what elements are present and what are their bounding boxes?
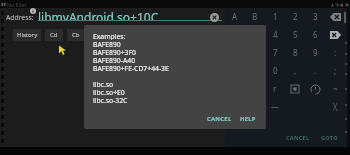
staticText: Cb bbox=[72, 31, 80, 39]
button[interactable]: Undo bbox=[306, 80, 324, 98]
staticText: R bbox=[96, 31, 100, 39]
staticText: 3 bbox=[313, 11, 318, 22]
button[interactable]: History bbox=[13, 29, 41, 41]
staticText: r bbox=[273, 83, 277, 94]
button[interactable]: B bbox=[246, 7, 264, 25]
staticText: ▣ bbox=[345, 2, 349, 7]
button[interactable]: 4 bbox=[266, 25, 284, 43]
staticText: 5 bbox=[293, 29, 298, 40]
staticText: Cd bbox=[50, 31, 58, 39]
button[interactable]: R bbox=[89, 29, 107, 41]
staticText: B bbox=[252, 11, 258, 22]
button[interactable]: Cb bbox=[67, 29, 85, 41]
button[interactable]: — bbox=[266, 97, 284, 115]
button[interactable]: ; bbox=[326, 61, 344, 79]
button[interactable]: HELP bbox=[236, 112, 260, 126]
staticText: 8 bbox=[293, 47, 298, 58]
button[interactable]: CANCEL bbox=[282, 131, 314, 145]
staticText: BAFE890-A40 bbox=[93, 56, 136, 64]
button[interactable]: Clear bbox=[209, 12, 220, 23]
button[interactable]: Delete bbox=[326, 26, 344, 44]
button[interactable]: 7 bbox=[266, 43, 284, 61]
staticText: ; bbox=[334, 65, 337, 76]
staticText: BAFE890+FE-CD7+44-3E bbox=[93, 64, 169, 72]
button[interactable]: r bbox=[266, 79, 284, 97]
staticText: ◑ bbox=[335, 2, 339, 7]
button[interactable]: CANCEL bbox=[203, 112, 236, 126]
staticText: A bbox=[232, 11, 238, 22]
staticText: ■ bbox=[340, 3, 344, 7]
button[interactable]: Collapse bbox=[326, 98, 344, 116]
button[interactable]: 8 bbox=[286, 43, 304, 61]
staticText: Examples: bbox=[93, 32, 126, 40]
staticText: 7 bbox=[273, 47, 278, 58]
button[interactable]: 9 bbox=[306, 43, 324, 61]
button[interactable]: Cd bbox=[45, 29, 63, 41]
staticText: 9 bbox=[313, 47, 318, 58]
staticText: 4 bbox=[273, 29, 278, 40]
staticText: BAFE890+3F0 bbox=[93, 48, 136, 56]
button[interactable]: Backspace bbox=[326, 8, 344, 26]
staticText: libmyAndroid.so+10C bbox=[38, 9, 159, 21]
button[interactable]: , bbox=[286, 61, 304, 79]
staticText: libc.so-32C bbox=[93, 96, 128, 104]
button[interactable]: 2 bbox=[286, 7, 304, 25]
button[interactable]: 3 bbox=[306, 7, 324, 25]
button[interactable]: libmyAndroid.so+10C bbox=[38, 9, 222, 21]
button[interactable]: GOTO bbox=[317, 131, 342, 145]
staticText: CANCEL bbox=[207, 115, 232, 123]
staticText: ~ bbox=[333, 83, 338, 94]
staticText: 6 bbox=[313, 29, 318, 40]
staticText: : bbox=[334, 47, 337, 58]
staticText: Address: bbox=[6, 13, 34, 22]
staticText: ▲ bbox=[331, 3, 334, 7]
staticText: GOTO bbox=[321, 134, 338, 142]
staticText: 0 bbox=[273, 65, 278, 76]
button[interactable]: A bbox=[226, 7, 244, 25]
staticText: CANCEL bbox=[286, 134, 310, 142]
button[interactable]: : bbox=[326, 43, 344, 61]
staticText: HELP bbox=[240, 115, 256, 123]
button[interactable]: 6 bbox=[306, 25, 324, 43]
button[interactable]: 5 bbox=[286, 25, 304, 43]
staticText: No filter bbox=[7, 1, 27, 8]
staticText: 1 bbox=[273, 11, 278, 22]
staticText: — bbox=[271, 101, 279, 112]
staticText: , bbox=[294, 65, 297, 76]
staticText: ╳ bbox=[333, 103, 338, 111]
button[interactable]: ~ bbox=[326, 79, 344, 97]
staticText: History bbox=[17, 31, 38, 39]
staticText: . bbox=[314, 65, 317, 76]
staticText: BAFE890 bbox=[93, 40, 121, 48]
staticText: libc.so bbox=[93, 80, 114, 88]
button[interactable]: 1 bbox=[266, 7, 284, 25]
button[interactable]: 0 bbox=[266, 61, 284, 79]
staticText: 2 bbox=[293, 11, 298, 22]
staticText: libc.so+E0 bbox=[93, 88, 125, 96]
button[interactable]: Select bbox=[286, 80, 304, 98]
